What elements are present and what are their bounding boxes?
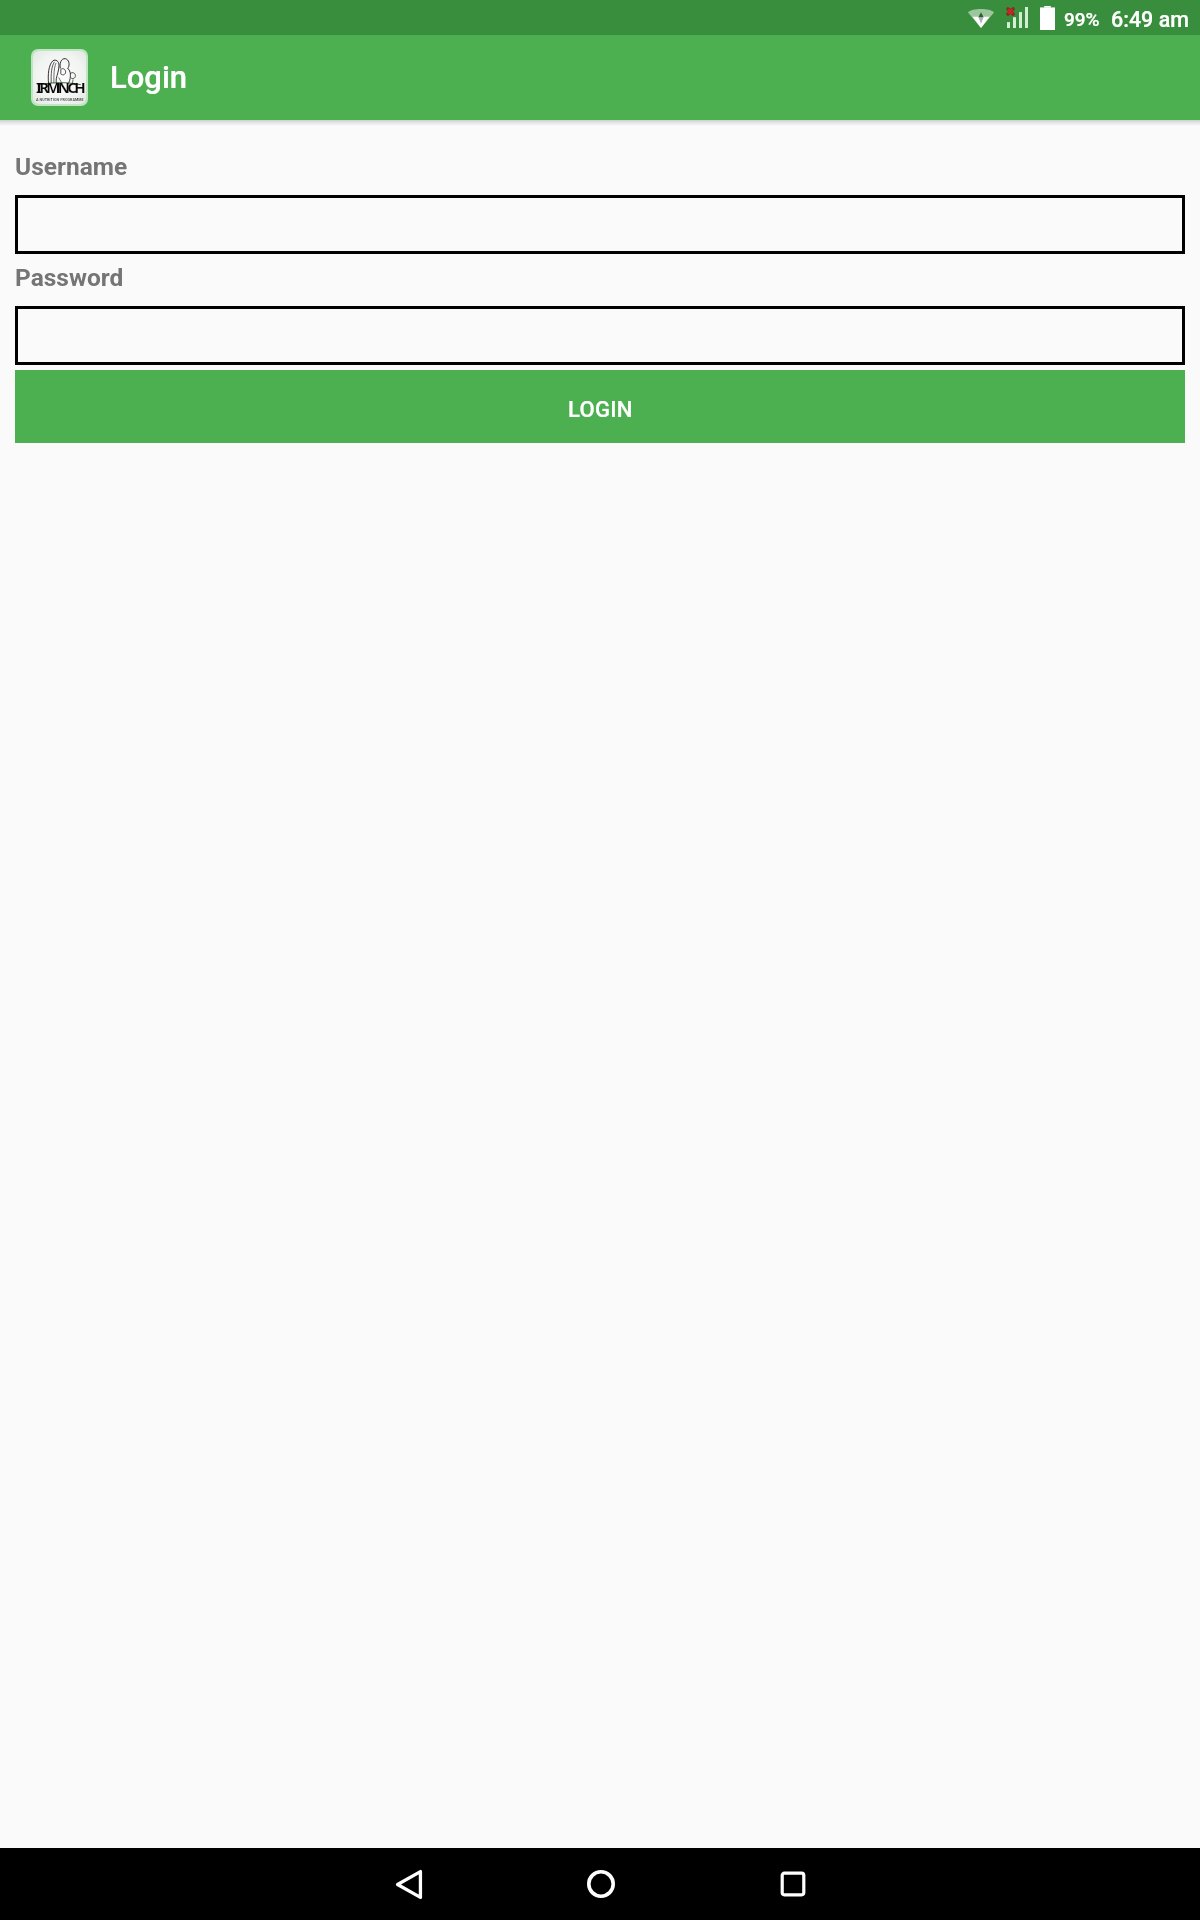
- button[interactable]: Recent apps: [733, 1848, 853, 1920]
- staticText: 6:49 am: [1111, 7, 1189, 32]
- button[interactable]: Home: [541, 1848, 661, 1920]
- button[interactable]: Back: [349, 1848, 469, 1920]
- staticText: 99%: [1064, 8, 1100, 30]
- button[interactable]: LOGIN: [15, 370, 1185, 443]
- button[interactable]: Password field: [15, 306, 1185, 365]
- staticText: A NUTRITION PROGRAMME: [36, 97, 84, 102]
- staticText: Login: [110, 59, 188, 95]
- staticText: Username: [15, 152, 128, 181]
- staticText: LOGIN: [568, 397, 633, 423]
- staticText: IRMNCH: [36, 77, 83, 97]
- button[interactable]: Username field: [15, 195, 1185, 254]
- staticText: Password: [15, 263, 124, 292]
